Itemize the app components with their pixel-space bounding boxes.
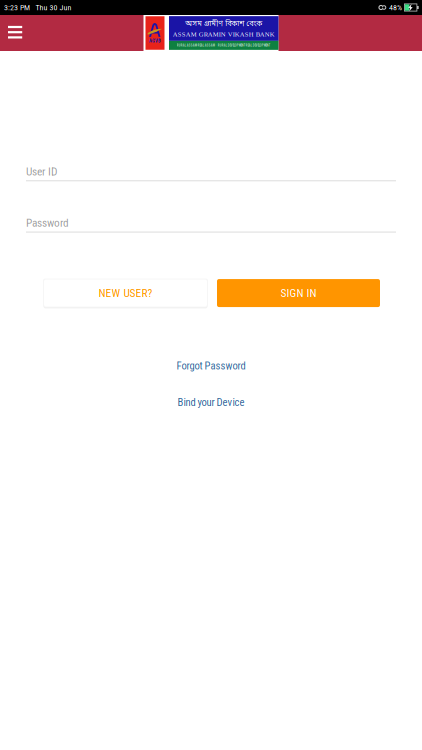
staticText: RURAL ASSAM-REAL ASSAM · RURAL DEVELOPME… — [177, 44, 271, 47]
staticText: SIGN IN — [280, 286, 316, 300]
button[interactable]: Bind your Device — [177, 396, 244, 409]
staticText: User ID — [26, 165, 57, 178]
staticText: AGVB — [149, 38, 161, 43]
staticText: Thu 30 Jun — [35, 3, 71, 12]
button[interactable]: NEW USER? — [43, 278, 208, 309]
button[interactable]: Forgot Password — [176, 360, 245, 372]
button[interactable]: Open navigation menu — [0, 15, 36, 50]
staticText: Password — [26, 216, 69, 230]
staticText: 48% — [389, 3, 402, 12]
staticText: NEW USER? — [98, 286, 152, 300]
staticText: Forgot Password — [176, 360, 245, 372]
staticText: 3:23 PM — [4, 3, 30, 12]
button[interactable]: SIGN IN — [217, 279, 380, 307]
staticText: Bind your Device — [177, 396, 244, 409]
staticText: অসম গ্ৰামীণ বিকাশ বেংক — [185, 19, 262, 29]
staticText: ASSAM GRAMIN VIKASH BANK — [173, 30, 275, 38]
